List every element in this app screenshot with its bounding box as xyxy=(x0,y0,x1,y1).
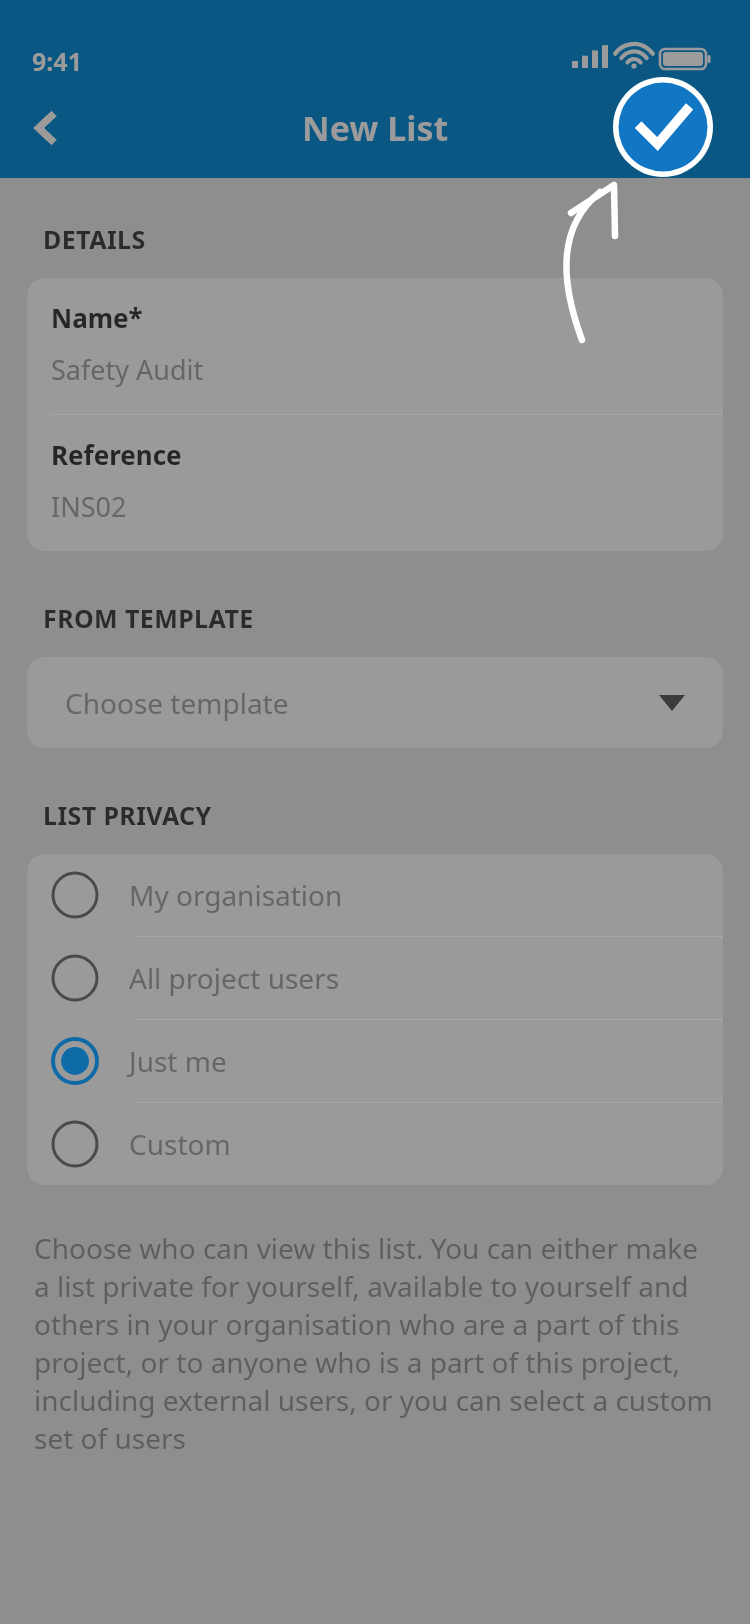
staticText: FROM TEMPLATE xyxy=(43,601,254,635)
staticText: My organisation xyxy=(129,876,343,914)
staticText: Choose who can view this list. You can e… xyxy=(34,1229,716,1457)
button[interactable]: Confirm xyxy=(613,77,713,177)
button[interactable]: Custom xyxy=(27,1103,723,1185)
staticText: INS02 xyxy=(51,488,127,525)
button[interactable]: Name* xyxy=(27,278,723,414)
button[interactable]: Choose template xyxy=(27,657,723,748)
staticText: Choose template xyxy=(65,684,289,722)
staticText: Name* xyxy=(51,300,143,335)
staticText: 9:41 xyxy=(32,44,82,78)
staticText: Custom xyxy=(129,1125,231,1163)
staticText: Reference xyxy=(51,437,182,472)
staticText: DETAILS xyxy=(43,222,146,256)
button[interactable]: Just me xyxy=(27,1020,723,1103)
button[interactable]: All project users xyxy=(27,937,723,1020)
staticText: New List xyxy=(302,105,449,151)
staticText: All project users xyxy=(129,959,340,997)
button[interactable]: My organisation xyxy=(27,854,723,937)
staticText: Safety Audit xyxy=(51,351,204,388)
staticText: LIST PRIVACY xyxy=(43,798,212,832)
staticText: Just me xyxy=(129,1042,227,1080)
button[interactable]: Reference xyxy=(27,415,723,551)
button[interactable]: Back xyxy=(12,95,78,161)
